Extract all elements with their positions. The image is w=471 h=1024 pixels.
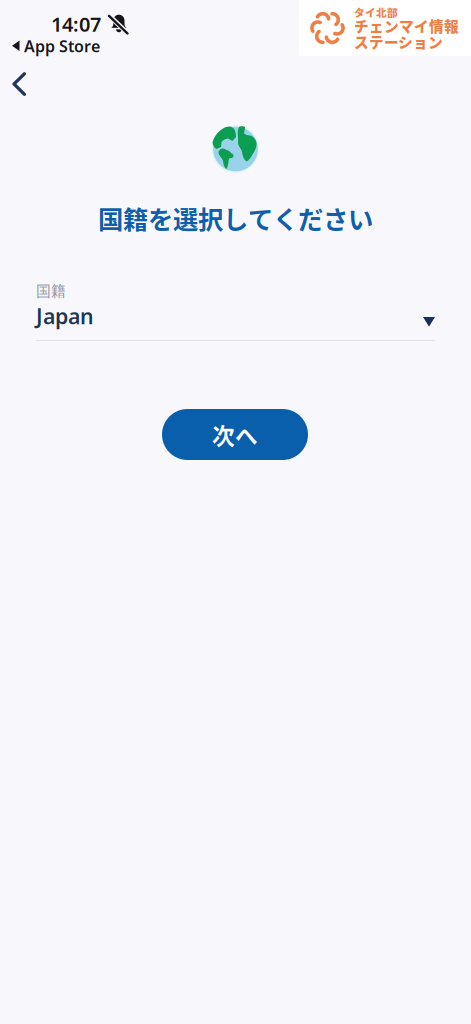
staticText: タイ北部 xyxy=(354,4,398,20)
staticText: チェンマイ情報 xyxy=(354,15,459,36)
staticText: 次へ xyxy=(212,418,258,451)
button[interactable]: 国籍 xyxy=(36,282,435,341)
button[interactable]: Back xyxy=(0,62,41,106)
staticText: ステーション xyxy=(354,31,443,52)
staticText: 国籍を選択してください xyxy=(98,200,373,236)
staticText: Japan xyxy=(36,302,94,330)
staticText: App Store xyxy=(24,35,100,57)
staticText: 国籍 xyxy=(36,279,66,301)
staticText: 14:07 xyxy=(51,11,101,37)
button[interactable]: 次へ xyxy=(162,409,308,460)
button[interactable]: App Store xyxy=(0,35,112,57)
